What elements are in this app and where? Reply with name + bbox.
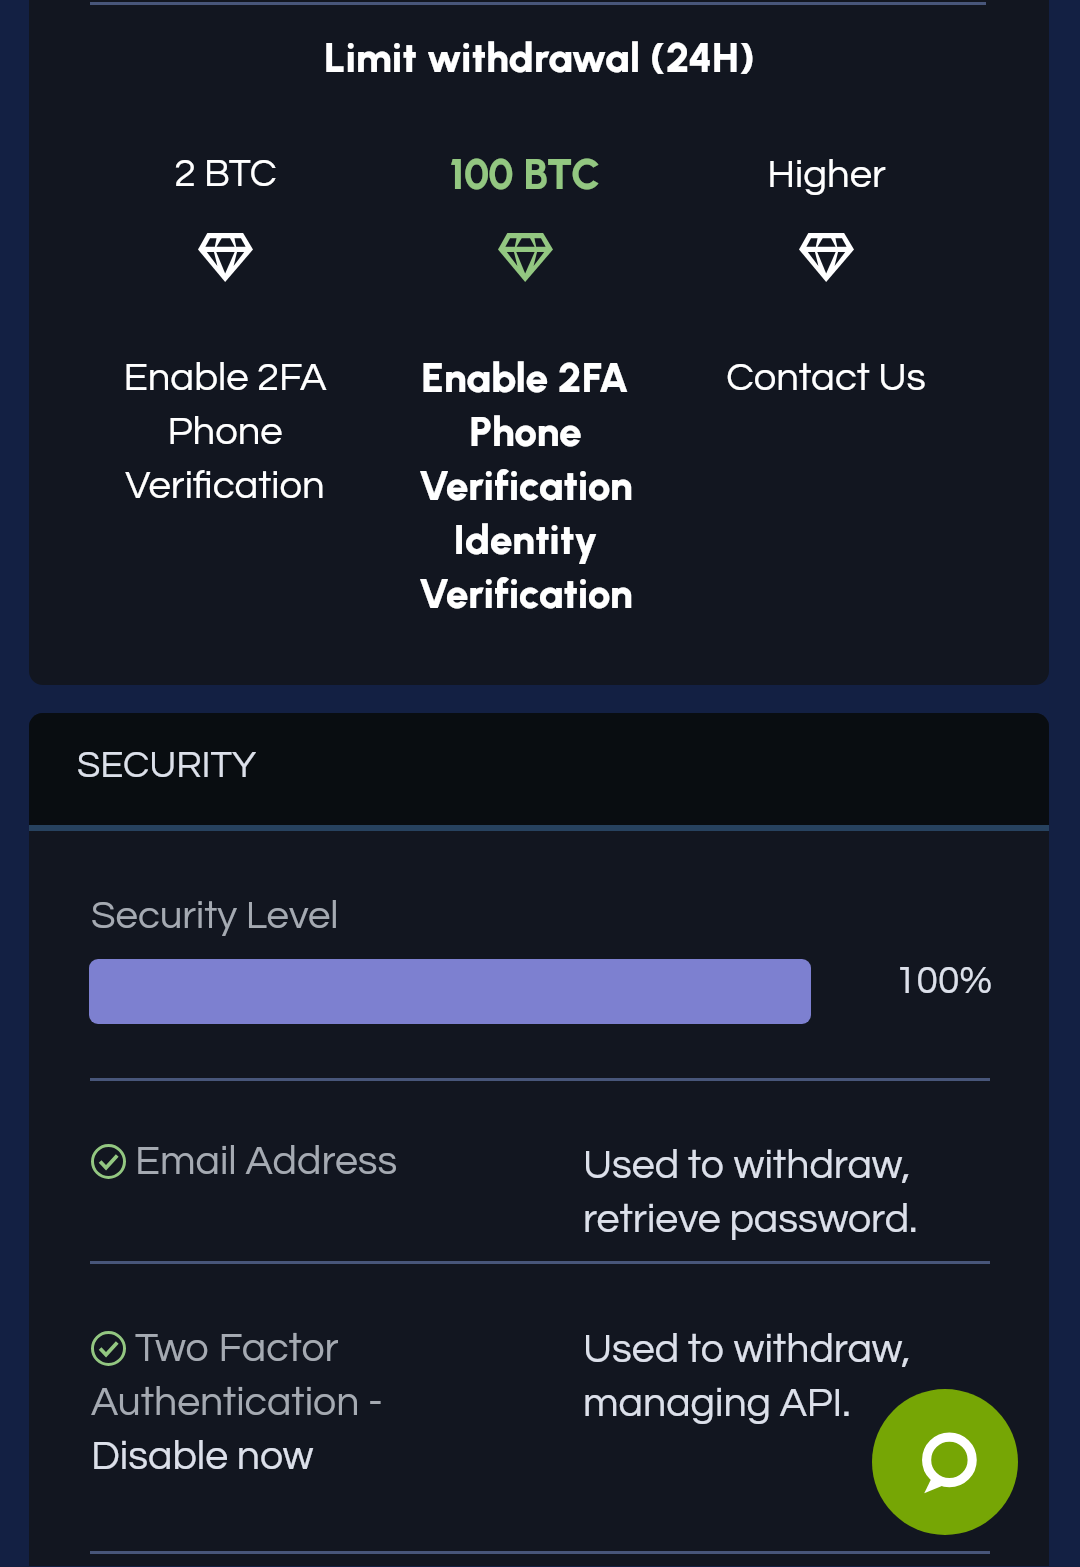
staticText: Verification	[418, 461, 633, 510]
staticText: Disable now	[91, 1435, 314, 1477]
staticText: retrieve password.	[583, 1198, 918, 1240]
staticText: Used to withdraw,	[583, 1328, 911, 1370]
button[interactable]: 100 BTC	[365, 147, 685, 620]
staticText: Enable 2FA	[421, 353, 629, 402]
staticText: Two Factor	[135, 1327, 339, 1369]
staticText: managing API.	[583, 1382, 851, 1424]
staticText: Verification	[125, 465, 325, 506]
staticText: 100%	[895, 961, 993, 1001]
button[interactable]: Open chat support	[872, 1389, 1018, 1535]
staticText: Phone	[167, 411, 283, 452]
staticText: Identity	[453, 515, 598, 564]
staticText: 100 BTC	[449, 149, 601, 199]
staticText: SECURITY	[77, 746, 257, 785]
staticText: Email Address	[135, 1140, 398, 1182]
button[interactable]: 2 BTC	[65, 147, 385, 512]
staticText: Limit withdrawal (24H)	[324, 34, 755, 83]
staticText: Contact Us	[726, 357, 926, 398]
staticText: Security Level	[91, 895, 339, 936]
staticText: 2 BTC	[174, 154, 277, 194]
staticText: Used to withdraw,	[583, 1144, 911, 1186]
staticText: Authentication -	[91, 1381, 383, 1423]
staticText: Enable 2FA	[123, 357, 327, 398]
button[interactable]: Higher	[666, 147, 986, 404]
staticText: Higher	[767, 154, 886, 195]
staticText: Phone	[469, 407, 582, 456]
staticText: Verification	[418, 569, 633, 618]
